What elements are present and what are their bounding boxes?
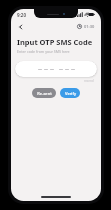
staticText: Verify [65,91,76,96]
button[interactable]: Back [16,22,26,32]
button[interactable]: Verify [60,88,80,98]
staticText: Re-sent [37,91,52,96]
button[interactable] [15,61,97,77]
staticText: 01:30 [84,24,95,29]
staticText: Input OTP SMS Code [17,37,93,47]
staticText: Enter code from your SMS here [17,49,70,54]
staticText: resend [84,79,94,83]
button[interactable]: 01:30 [76,23,96,30]
button[interactable]: Re-sent [32,88,56,98]
staticText: 9:20 [17,12,26,18]
